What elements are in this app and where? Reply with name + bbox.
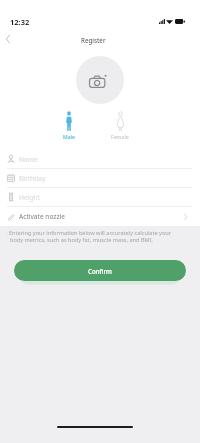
staticText: 12:32 <box>10 17 30 27</box>
button[interactable]: Height <box>0 188 200 206</box>
button[interactable]: Activate nozzle <box>0 207 200 226</box>
button[interactable]: Confirm <box>14 260 186 281</box>
staticText: · Entering your information below will a… <box>6 229 172 237</box>
staticText: Register <box>81 36 106 44</box>
button[interactable]: Male <box>53 111 85 140</box>
staticText: Activate nozzle <box>19 212 65 221</box>
button[interactable]: Name <box>0 150 200 168</box>
staticText: Female <box>111 133 129 140</box>
staticText: Confirm <box>88 267 112 275</box>
staticText: Height <box>19 193 40 202</box>
staticText: Name <box>19 155 38 164</box>
staticText: Male <box>63 133 75 140</box>
button[interactable]: Change photo <box>76 56 124 104</box>
staticText: Birthday <box>19 174 46 183</box>
button[interactable]: Back <box>0 31 16 47</box>
button[interactable]: Birthday <box>0 169 200 187</box>
staticText: body metrics, such as body fat, muscle m… <box>10 236 154 244</box>
button[interactable]: Female <box>104 111 136 140</box>
